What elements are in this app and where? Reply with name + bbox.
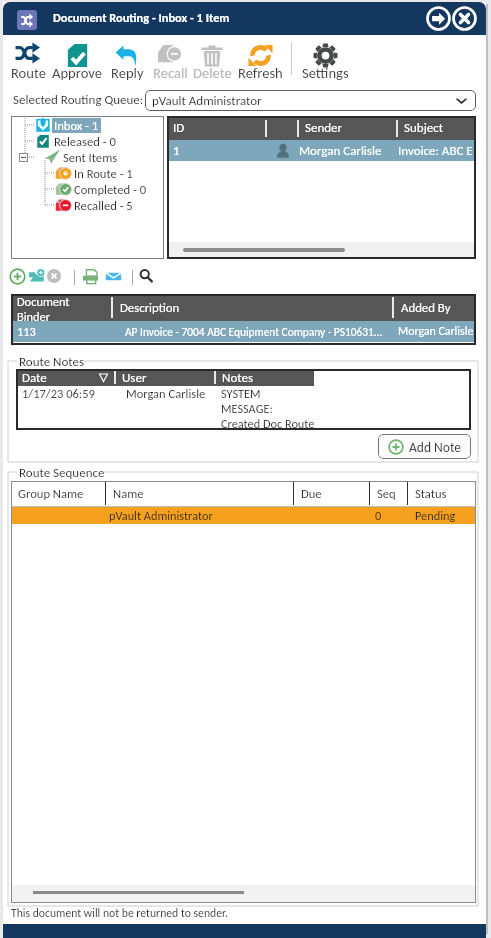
staticText: Selected Routing Queue:	[13, 92, 144, 108]
button[interactable]: Close	[452, 6, 477, 31]
button[interactable]: Settings	[295, 38, 355, 82]
button[interactable]: Reply	[97, 38, 157, 82]
button[interactable]: Sent Items	[35, 149, 120, 165]
staticText: pVault Administrator	[152, 93, 262, 109]
button[interactable]: Print	[82, 268, 99, 285]
staticText: Group Name	[18, 486, 84, 501]
button[interactable]: Add	[9, 268, 26, 285]
staticText: Name	[113, 486, 144, 501]
button[interactable]: pVault Administrator	[11, 507, 476, 524]
staticText: Completed - 0	[74, 182, 147, 197]
button[interactable]: Remove	[46, 268, 62, 284]
button[interactable]: Forward	[426, 6, 451, 31]
button[interactable]: Approve	[47, 38, 107, 82]
button[interactable]: 113	[11, 321, 476, 342]
staticText: Created Doc Route	[221, 416, 315, 430]
button[interactable]: Recall	[140, 38, 200, 82]
button[interactable]: Refresh	[230, 38, 290, 82]
staticText: Released - 0	[54, 134, 116, 149]
staticText: Morgan Carlisle	[126, 386, 221, 401]
staticText: Morgan Carlisle	[398, 324, 474, 339]
button[interactable]: Recalled - 5	[55, 197, 135, 213]
staticText: Notes	[222, 370, 254, 386]
staticText: Add Note	[409, 439, 461, 455]
staticText: Delete	[193, 64, 232, 82]
button[interactable]: New folder	[28, 268, 44, 284]
button[interactable]: 1	[167, 140, 476, 161]
staticText: Sender	[305, 120, 343, 136]
staticText: 113	[17, 324, 113, 339]
button[interactable]: In Route - 1	[55, 165, 135, 181]
button[interactable]: Delete	[182, 38, 242, 82]
button[interactable]: pVault Administrator	[145, 90, 476, 111]
staticText: Settings	[302, 64, 349, 82]
staticText: 0	[375, 508, 382, 523]
staticText: Morgan Carlisle	[299, 143, 398, 159]
staticText: Reply	[111, 64, 144, 82]
staticText: Date	[22, 370, 47, 386]
staticText: 1	[173, 143, 267, 159]
staticText: Recalled - 5	[74, 198, 133, 213]
staticText: Document Routing - Inbox - 1 Item	[53, 10, 230, 25]
staticText: Route Sequence	[19, 465, 105, 481]
button[interactable]: Add Note	[378, 434, 471, 459]
staticText: Document	[17, 294, 70, 309]
button[interactable]: Released - 0	[35, 133, 118, 149]
button[interactable]: Inbox - 1	[35, 117, 101, 133]
staticText: pVault Administrator	[109, 508, 213, 523]
staticText: SYSTEM	[221, 386, 261, 401]
staticText: AP Invoice - 7004 ABC Equipment Company …	[125, 325, 383, 339]
staticText: User	[122, 370, 147, 386]
staticText: This document will not be returned to se…	[11, 906, 228, 920]
staticText: Recall	[153, 64, 188, 82]
button[interactable]: Search	[138, 268, 154, 284]
staticText: ID	[173, 120, 185, 136]
staticText: Pending	[415, 508, 456, 523]
button[interactable]: Route	[0, 38, 58, 82]
staticText: Route Notes	[19, 354, 85, 370]
staticText: Due	[301, 486, 322, 501]
staticText: Status	[415, 486, 447, 501]
staticText: Approve	[52, 64, 102, 82]
staticText: Sent Items	[63, 150, 118, 165]
staticText: Inbox - 1	[54, 118, 99, 133]
staticText: Subject	[404, 120, 444, 136]
button[interactable]: Completed - 0	[55, 181, 149, 197]
staticText: Route	[11, 64, 46, 82]
staticText: Seq	[377, 486, 396, 501]
button[interactable]: Email	[105, 268, 122, 285]
staticText: Added By	[401, 300, 451, 316]
staticText: Invoice: ABC E	[398, 143, 473, 159]
staticText: Description	[120, 300, 180, 316]
staticText: In Route - 1	[74, 166, 133, 181]
staticText: Binder	[17, 309, 51, 321]
staticText: MESSAGE:	[221, 401, 273, 416]
staticText: Refresh	[238, 64, 283, 82]
staticText: 1/17/23 06:59	[22, 386, 126, 401]
